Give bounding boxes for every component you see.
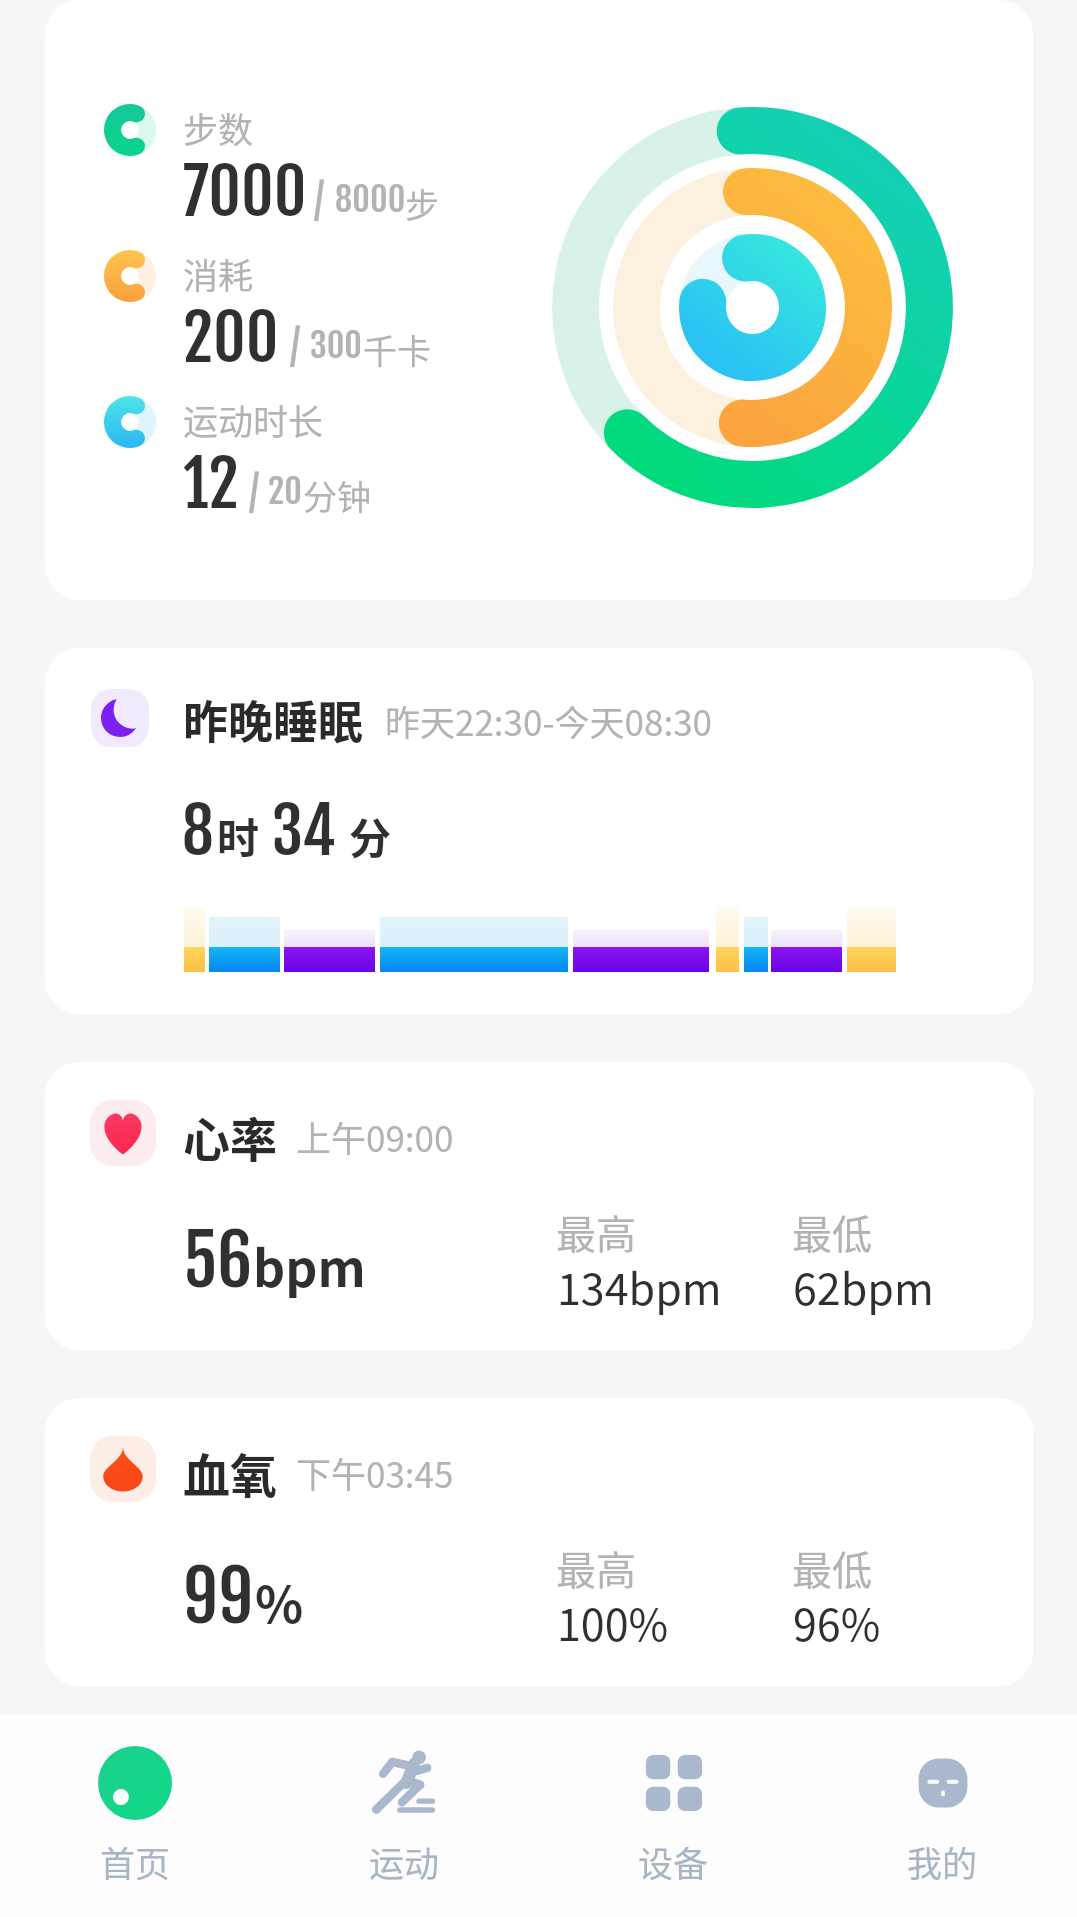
staticText: 时 bbox=[217, 805, 260, 866]
button[interactable]: 步数 bbox=[45, 0, 1033, 600]
staticText: 运动 bbox=[369, 1836, 440, 1887]
staticText: 200 bbox=[183, 298, 279, 377]
staticText: / bbox=[249, 469, 260, 517]
staticText: 34 bbox=[272, 791, 336, 870]
staticText: 100% bbox=[557, 1591, 669, 1653]
staticText: 99 bbox=[183, 1553, 254, 1640]
staticText: 消耗 bbox=[183, 248, 254, 299]
staticText: 心率 bbox=[183, 1102, 277, 1170]
staticText: 最高 bbox=[556, 1539, 636, 1597]
staticText: 134bpm bbox=[557, 1255, 722, 1317]
staticText: 20 bbox=[268, 470, 302, 513]
staticText: 运动时长 bbox=[183, 394, 324, 445]
button[interactable]: 心率 bbox=[45, 1062, 1033, 1350]
staticText: 最高 bbox=[556, 1203, 636, 1261]
staticText: 最低 bbox=[792, 1539, 872, 1597]
staticText: 分 bbox=[349, 805, 392, 866]
staticText: 步数 bbox=[183, 102, 254, 153]
staticText: 96% bbox=[793, 1591, 881, 1653]
staticText: 最低 bbox=[792, 1203, 872, 1261]
staticText: 昨晚睡眠 bbox=[183, 687, 364, 752]
staticText: 步 bbox=[405, 179, 439, 228]
staticText: % bbox=[255, 1565, 304, 1637]
staticText: / bbox=[290, 323, 301, 371]
staticText: 千卡 bbox=[363, 325, 431, 374]
staticText: 7000 bbox=[183, 152, 307, 231]
staticText: 8 bbox=[182, 791, 214, 870]
staticText: 我的 bbox=[907, 1836, 978, 1887]
staticText: 62bpm bbox=[793, 1255, 934, 1317]
staticText: 设备 bbox=[638, 1836, 709, 1887]
staticText: 血氧 bbox=[183, 1438, 277, 1506]
staticText: 分钟 bbox=[303, 471, 371, 520]
staticText: 12 bbox=[183, 444, 239, 523]
staticText: 300 bbox=[310, 324, 362, 367]
button[interactable]: Devices bbox=[539, 1715, 808, 1917]
button[interactable]: Profile bbox=[808, 1715, 1077, 1917]
staticText: / bbox=[314, 177, 325, 225]
staticText: bpm bbox=[253, 1229, 366, 1301]
staticText: 昨天22:30-今天08:30 bbox=[385, 695, 713, 746]
button[interactable]: Home bbox=[0, 1715, 270, 1917]
staticText: 56 bbox=[183, 1217, 253, 1304]
staticText: 下午03:45 bbox=[296, 1447, 454, 1498]
button[interactable]: 血氧 bbox=[45, 1398, 1033, 1686]
button[interactable]: Workout bbox=[270, 1715, 539, 1917]
staticText: 8000 bbox=[335, 178, 406, 221]
staticText: 首页 bbox=[100, 1836, 171, 1887]
button[interactable]: 昨晚睡眠 bbox=[45, 648, 1033, 1014]
staticText: 上午09:00 bbox=[296, 1111, 454, 1162]
